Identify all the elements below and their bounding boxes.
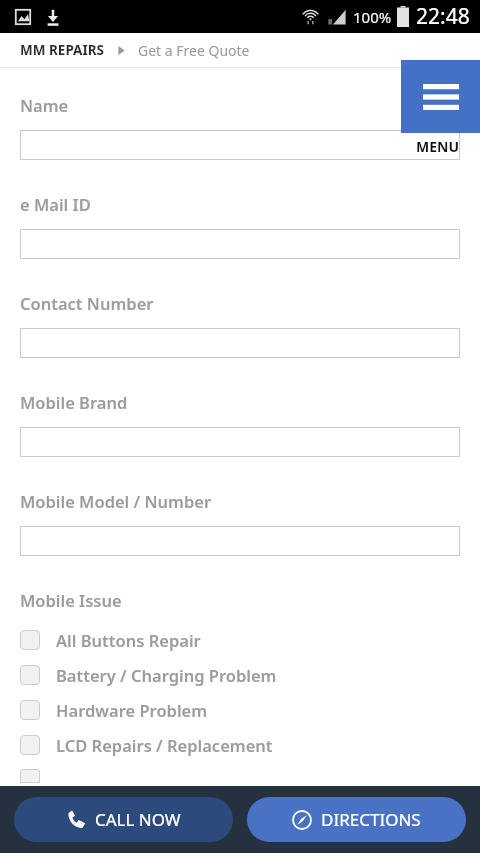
- staticText: Mobile Model / Number: [20, 490, 212, 512]
- staticText: 22:48: [416, 2, 470, 31]
- button[interactable]: DIRECTIONS: [247, 797, 466, 842]
- button[interactable]: [20, 229, 460, 259]
- staticText: Mobile Brand: [20, 391, 128, 413]
- staticText: MENU: [416, 137, 460, 156]
- staticText: LCD Repairs / Replacement: [56, 734, 273, 756]
- staticText: e Mail ID: [20, 193, 91, 215]
- button[interactable]: [20, 769, 480, 783]
- button[interactable]: LCD Repairs / Replacement: [20, 734, 460, 756]
- button[interactable]: Menu: [401, 60, 480, 133]
- staticText: All Buttons Repair: [56, 629, 201, 651]
- button[interactable]: MM REPAIRS: [20, 41, 104, 59]
- staticText: Battery / Charging Problem: [56, 664, 277, 686]
- staticText: MM REPAIRS: [20, 41, 104, 59]
- staticText: 100%: [353, 7, 392, 27]
- button[interactable]: All Buttons Repair: [20, 629, 460, 651]
- staticText: Name: [20, 94, 69, 116]
- button[interactable]: CALL NOW: [14, 797, 233, 842]
- staticText: Get a Free Quote: [138, 41, 250, 60]
- button[interactable]: [20, 526, 460, 556]
- staticText: Mobile Issue: [20, 589, 122, 611]
- button[interactable]: [20, 130, 460, 160]
- staticText: Hardware Problem: [56, 699, 208, 721]
- button[interactable]: Battery / Charging Problem: [20, 664, 460, 686]
- button[interactable]: Hardware Problem: [20, 699, 460, 721]
- staticText: Contact Number: [20, 292, 154, 314]
- button[interactable]: [20, 328, 460, 358]
- staticText: CALL NOW: [95, 808, 181, 831]
- staticText: DIRECTIONS: [321, 808, 421, 831]
- button[interactable]: [20, 427, 460, 457]
